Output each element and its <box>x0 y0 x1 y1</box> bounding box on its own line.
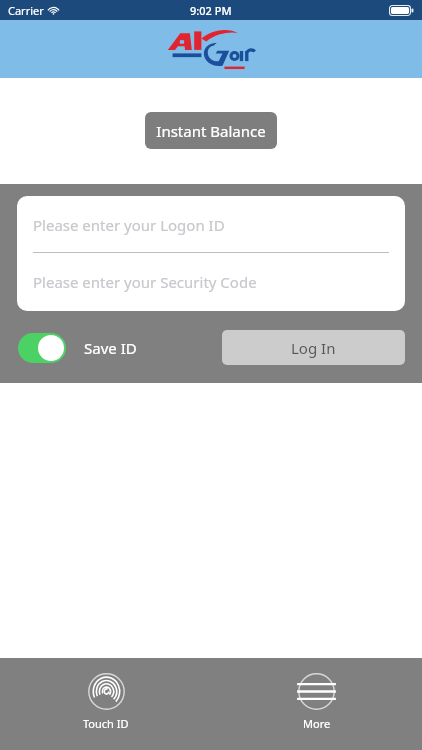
staticText: More <box>303 716 331 731</box>
other: More <box>298 673 335 710</box>
button[interactable]: Save ID toggle, on <box>18 333 66 363</box>
button[interactable]: Please enter your Logon ID <box>17 196 405 253</box>
button[interactable]: More <box>211 658 422 750</box>
staticText: Please enter your Security Code <box>33 272 257 292</box>
staticText: Log In <box>291 338 336 358</box>
button[interactable]: Touch ID <box>0 658 211 750</box>
button[interactable]: Log In <box>222 330 405 365</box>
staticText: Save ID <box>84 338 137 358</box>
staticText: Instant Balance <box>156 121 266 141</box>
staticText: Please enter your Logon ID <box>33 215 225 235</box>
button[interactable]: Instant Balance <box>145 112 277 149</box>
staticText: Touch ID <box>83 716 129 731</box>
staticText: Carrier <box>8 3 44 18</box>
button[interactable]: Please enter your Security Code <box>17 253 405 311</box>
staticText: 9:02 PM <box>190 3 232 18</box>
other: Touch ID <box>88 673 125 710</box>
